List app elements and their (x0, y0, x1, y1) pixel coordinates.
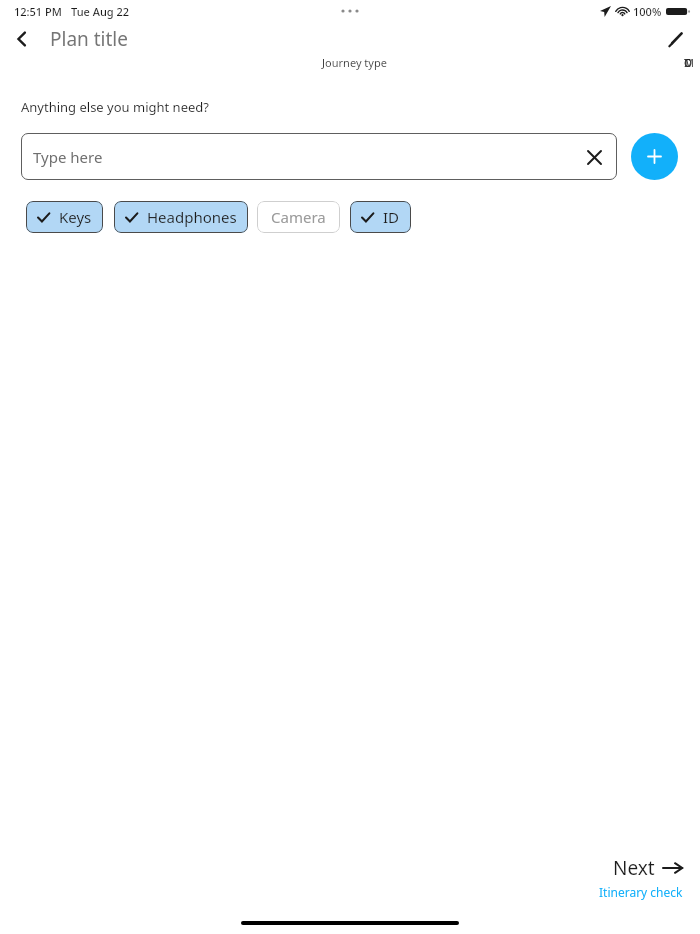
button[interactable]: Keys (26, 201, 103, 233)
button[interactable]: Type here (21, 133, 617, 180)
button[interactable]: Back (8, 25, 36, 53)
button[interactable]: Camera (257, 201, 340, 233)
staticText: Type here (33, 147, 103, 167)
button[interactable]: Headphones (114, 201, 248, 233)
button[interactable]: Clear (581, 144, 607, 170)
button[interactable]: Edit (660, 24, 690, 54)
staticText: 100% (633, 4, 662, 19)
staticText: Camera (271, 207, 326, 227)
staticText: Anything else you might need? (21, 98, 209, 116)
staticText: ID (383, 207, 400, 227)
button[interactable]: ID (350, 201, 411, 233)
staticText: 12:51 PM (14, 4, 62, 19)
staticText: Headphones (147, 207, 237, 227)
staticText: Journey type (322, 55, 387, 70)
button[interactable]: Add (631, 133, 678, 180)
staticText: Keys (59, 207, 92, 227)
staticText: Tue Aug 22 (71, 4, 130, 19)
staticText: Itinerary check (599, 884, 683, 900)
staticText: Next (613, 855, 655, 881)
button[interactable]: Journey type (24, 55, 684, 83)
button[interactable]: Next (599, 855, 683, 900)
staticText: Plan title (50, 26, 128, 52)
